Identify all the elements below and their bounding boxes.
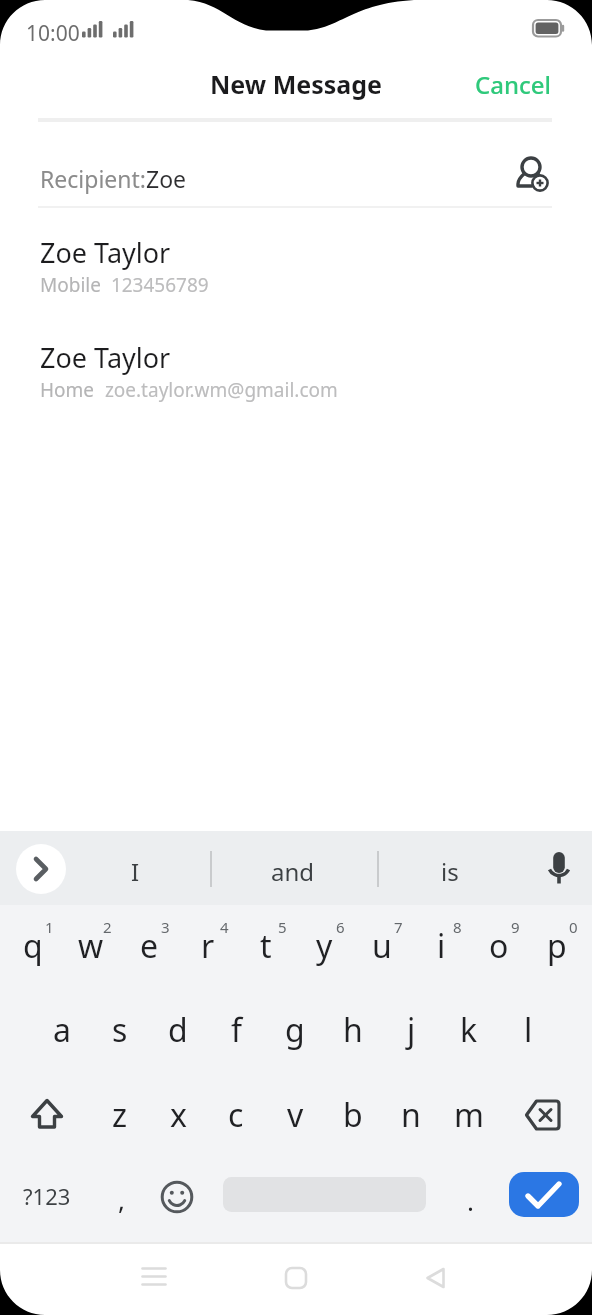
button[interactable] xyxy=(29,1097,65,1133)
button[interactable] xyxy=(418,1260,454,1296)
button[interactable]: c xyxy=(207,1080,265,1150)
staticText: d xyxy=(168,1008,188,1052)
button[interactable]: , xyxy=(105,1181,137,1217)
button[interactable]: q xyxy=(4,911,62,981)
button[interactable]: I xyxy=(105,855,165,883)
staticText: 5 xyxy=(278,917,287,937)
button[interactable]: y xyxy=(295,911,353,981)
button[interactable]: d xyxy=(149,995,207,1065)
button[interactable] xyxy=(20,333,572,405)
staticText: g xyxy=(285,1008,305,1052)
button[interactable]: b xyxy=(324,1080,382,1150)
button[interactable]: and xyxy=(253,855,333,883)
staticText: a xyxy=(53,1008,71,1052)
staticText: Zoe Taylor xyxy=(40,339,171,376)
button[interactable]: h xyxy=(324,995,382,1065)
button[interactable] xyxy=(160,1180,194,1214)
staticText: Recipient: xyxy=(40,163,146,194)
staticText: 2 xyxy=(103,917,112,937)
staticText: v xyxy=(287,1093,304,1137)
button[interactable]: is xyxy=(420,855,480,883)
staticText: . xyxy=(467,1183,474,1218)
staticText: Home xyxy=(40,377,95,403)
button[interactable]: z xyxy=(91,1080,149,1150)
button[interactable]: w xyxy=(62,911,120,981)
staticText: u xyxy=(372,924,392,968)
staticText: z xyxy=(112,1093,128,1137)
staticText: 4 xyxy=(220,917,229,937)
button[interactable]: k xyxy=(440,995,498,1065)
staticText: n xyxy=(401,1093,421,1137)
staticText: is xyxy=(441,855,459,883)
staticText: q xyxy=(23,924,43,968)
staticText: e xyxy=(140,924,159,968)
staticText: , xyxy=(118,1182,125,1217)
button[interactable] xyxy=(16,844,66,894)
button[interactable]: x xyxy=(149,1080,207,1150)
staticText: c xyxy=(228,1093,244,1137)
staticText: h xyxy=(343,1008,363,1052)
staticText: Zoe Taylor xyxy=(40,234,171,271)
staticText: l xyxy=(524,1008,533,1052)
button[interactable]: a xyxy=(33,995,91,1065)
staticText: zoe.taylor.wm@gmail.com xyxy=(95,377,338,403)
button[interactable] xyxy=(547,848,573,888)
button[interactable]: r xyxy=(179,911,237,981)
staticText: k xyxy=(460,1008,478,1052)
button[interactable]: p xyxy=(528,911,586,981)
staticText: Cancel xyxy=(475,68,552,100)
button[interactable]: s xyxy=(91,995,149,1065)
button[interactable]: e xyxy=(120,911,178,981)
button[interactable]: g xyxy=(266,995,324,1065)
staticText: w xyxy=(78,924,104,968)
staticText: y xyxy=(316,924,333,968)
button[interactable] xyxy=(524,1099,564,1131)
staticText: i xyxy=(437,924,446,968)
staticText: Mobile xyxy=(40,272,101,298)
staticText: New Message xyxy=(210,67,382,101)
staticText: 8 xyxy=(453,917,462,937)
staticText: 7 xyxy=(394,917,403,937)
button[interactable]: n xyxy=(382,1080,440,1150)
button[interactable]: Cancel xyxy=(440,68,552,100)
staticText: p xyxy=(547,924,567,968)
button[interactable] xyxy=(20,228,572,300)
staticText: and xyxy=(271,855,315,883)
staticText: I xyxy=(131,855,140,883)
staticText: t xyxy=(260,924,272,968)
button[interactable]: . xyxy=(456,1182,484,1218)
button[interactable]: l xyxy=(499,995,557,1065)
button[interactable] xyxy=(136,1260,172,1296)
button[interactable]: u xyxy=(353,911,411,981)
staticText: b xyxy=(343,1093,363,1137)
staticText: f xyxy=(231,1008,243,1052)
button[interactable] xyxy=(509,1172,579,1217)
staticText: s xyxy=(112,1008,128,1052)
button[interactable]: m xyxy=(440,1080,498,1150)
staticText: r xyxy=(201,924,215,968)
staticText: j xyxy=(407,1008,416,1052)
staticText: m xyxy=(454,1093,484,1137)
staticText: 123456789 xyxy=(101,272,209,298)
button[interactable] xyxy=(514,153,554,193)
button[interactable]: ?123 xyxy=(16,1181,78,1209)
button[interactable]: i xyxy=(412,911,470,981)
staticText: 10:00 xyxy=(26,19,80,42)
staticText: 9 xyxy=(511,917,520,937)
staticText: ?123 xyxy=(23,1181,71,1209)
button[interactable] xyxy=(278,1260,314,1296)
staticText: x xyxy=(170,1093,187,1137)
button[interactable]: v xyxy=(266,1080,324,1150)
button[interactable]: f xyxy=(208,995,266,1065)
staticText: 6 xyxy=(336,917,345,937)
staticText: 0 xyxy=(569,917,578,937)
staticText: 3 xyxy=(161,917,170,937)
staticText: o xyxy=(489,924,509,968)
button[interactable]: t xyxy=(237,911,295,981)
button[interactable]: o xyxy=(470,911,528,981)
staticText: Zoe xyxy=(146,163,187,194)
staticText: 1 xyxy=(45,917,54,937)
button[interactable]: j xyxy=(382,995,440,1065)
